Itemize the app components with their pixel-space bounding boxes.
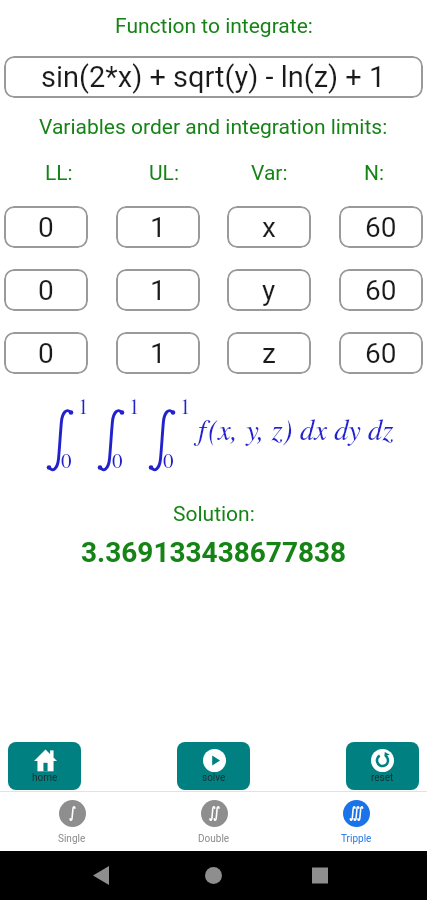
staticText: 0 (61, 451, 72, 472)
button[interactable]: y (227, 269, 311, 311)
staticText: 1 (150, 211, 166, 244)
staticText: home (32, 772, 58, 784)
button[interactable]: 60 (339, 206, 423, 248)
staticText: 60 (365, 211, 397, 244)
button[interactable]: 1 (116, 269, 200, 311)
staticText: 3.369133438677838 (81, 536, 347, 569)
staticText: Tripple (341, 833, 372, 845)
staticText: z (262, 337, 276, 370)
staticText: Solution: (173, 502, 255, 527)
staticText: solve (202, 772, 226, 784)
staticText: 60 (365, 337, 397, 370)
button[interactable]: Double (198, 800, 230, 845)
staticText: 1 (129, 397, 140, 418)
staticText: 0 (163, 451, 174, 472)
button[interactable]: 1 (116, 332, 200, 374)
button[interactable]: 60 (339, 269, 423, 311)
staticText: 1 (180, 397, 191, 418)
staticText: Variables order and integration limits: (39, 115, 388, 140)
staticText: Function to integrate: (115, 14, 313, 39)
button[interactable]: sin(2*x) + sqrt(y) - ln(z) + 1 (4, 56, 423, 98)
button[interactable]: x (227, 206, 311, 248)
staticText: f(x, y, z) dx dy dz (196, 417, 394, 446)
staticText: reset (371, 772, 394, 784)
button[interactable]: Tripple (341, 800, 372, 845)
button[interactable]: reset (346, 742, 419, 790)
staticText: 1 (78, 397, 89, 418)
button[interactable]: 0 (4, 332, 88, 374)
staticText: sin(2*x) + sqrt(y) - ln(z) + 1 (41, 60, 386, 94)
staticText: Var: (251, 161, 288, 186)
staticText: 60 (365, 274, 397, 307)
button[interactable]: 1 (116, 206, 200, 248)
button[interactable]: 0 (4, 206, 88, 248)
staticText: LL: (45, 161, 73, 186)
button[interactable]: 60 (339, 332, 423, 374)
staticText: Double (198, 833, 230, 845)
button[interactable]: z (227, 332, 311, 374)
staticText: 0 (112, 451, 123, 472)
staticText: 1 (150, 337, 166, 370)
staticText: x (262, 211, 276, 244)
staticText: Single (58, 833, 86, 845)
staticText: y (262, 274, 276, 307)
staticText: UL: (149, 161, 180, 186)
staticText: 0 (38, 274, 54, 307)
button[interactable]: 0 (4, 269, 88, 311)
staticText: 0 (38, 337, 54, 370)
button[interactable]: home (8, 742, 81, 790)
staticText: 0 (38, 211, 54, 244)
staticText: 1 (150, 274, 166, 307)
staticText: N: (364, 161, 385, 186)
button[interactable]: Single (58, 800, 86, 845)
button[interactable]: solve (177, 742, 250, 790)
